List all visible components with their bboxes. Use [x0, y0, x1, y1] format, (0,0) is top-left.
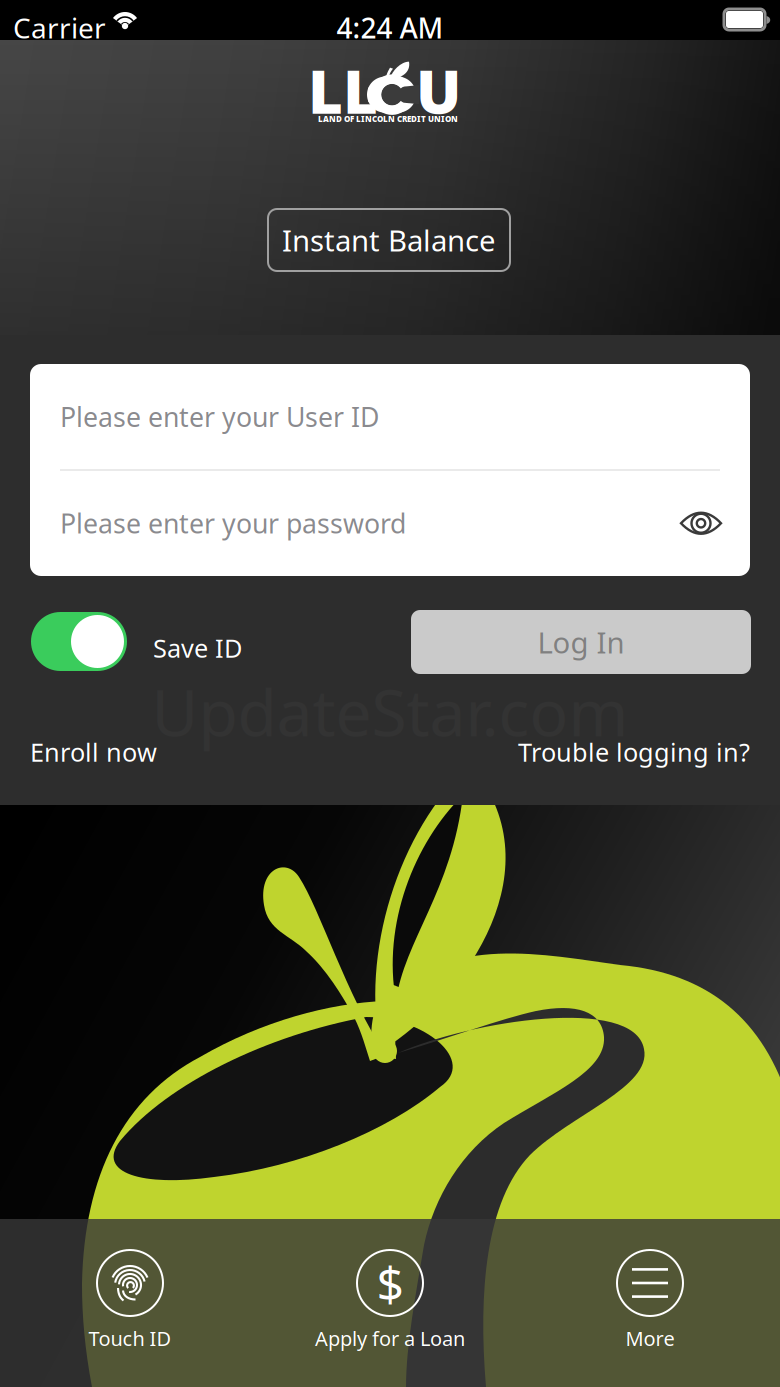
staticText: $ — [376, 1251, 403, 1315]
staticText: LAND OF LINCOLN CREDIT UNION — [318, 114, 458, 124]
staticText: LL — [308, 51, 378, 130]
staticText: Enroll now — [30, 735, 157, 769]
button[interactable] — [31, 612, 127, 671]
staticText: Instant Balance — [282, 220, 496, 259]
staticText: More — [625, 1325, 674, 1352]
staticText: Log In — [537, 622, 624, 661]
staticText: Save ID — [153, 631, 242, 665]
button[interactable]: Touch ID — [0, 1250, 260, 1352]
staticText: Please enter your User ID — [60, 399, 379, 434]
staticText: Apply for a Loan — [315, 1325, 465, 1352]
staticText: Touch ID — [88, 1325, 171, 1352]
staticText: UpdateStar.com — [151, 669, 628, 754]
button[interactable]: $ — [260, 1250, 520, 1352]
staticText: U — [416, 51, 461, 130]
staticText: 4:24 AM — [336, 9, 443, 46]
staticText: Please enter your password — [60, 505, 406, 541]
button[interactable]: Enroll now — [30, 735, 157, 769]
staticText: Trouble logging in? — [518, 735, 750, 769]
staticText: Carrier — [13, 9, 106, 46]
button[interactable]: Trouble logging in? — [518, 735, 750, 769]
button[interactable]: Instant Balance — [268, 209, 510, 271]
button[interactable]: More — [520, 1250, 780, 1352]
button[interactable]: Log In — [411, 610, 751, 674]
button[interactable]: Show password — [679, 507, 723, 539]
